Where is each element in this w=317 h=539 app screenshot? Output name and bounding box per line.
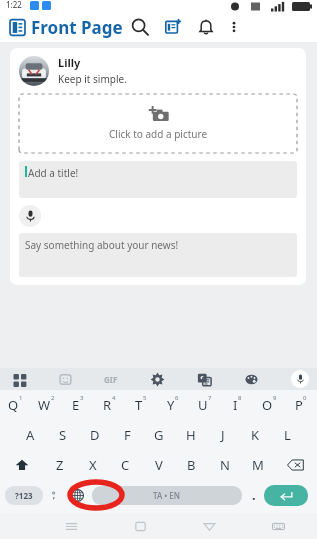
staticText: U xyxy=(198,396,208,414)
staticText: D xyxy=(90,426,100,444)
staticText: G xyxy=(154,426,164,444)
staticText: . xyxy=(252,486,256,504)
staticText: W xyxy=(38,396,51,414)
button[interactable]: TA • EN xyxy=(92,486,242,505)
button[interactable]: Click to add a picture xyxy=(19,94,297,153)
staticText: K xyxy=(251,426,260,444)
button[interactable]: Y xyxy=(157,390,189,420)
staticText: 0 xyxy=(303,394,307,402)
button[interactable]: E xyxy=(62,390,93,420)
staticText: N xyxy=(220,456,230,474)
staticText: Y xyxy=(167,396,175,414)
staticText: Front Page xyxy=(31,16,123,39)
button[interactable]: Home xyxy=(129,515,151,537)
staticText: Add a title! xyxy=(28,166,79,180)
button[interactable]: K xyxy=(239,420,271,450)
staticText: ?123 xyxy=(15,490,33,501)
staticText: 7 xyxy=(208,394,212,402)
staticText: C xyxy=(121,456,130,474)
button[interactable]: H xyxy=(175,420,207,450)
button[interactable]: L xyxy=(271,420,303,450)
button[interactable]: C xyxy=(109,450,142,480)
staticText: H xyxy=(186,426,196,444)
staticText: L xyxy=(284,426,291,444)
staticText: Say something about your news! xyxy=(25,238,179,252)
button[interactable]: More options xyxy=(226,19,242,35)
button[interactable]: Backspace xyxy=(274,450,317,480)
button[interactable]: Enter xyxy=(264,485,308,506)
button[interactable]: Clipboard xyxy=(12,372,27,387)
button[interactable]: Recent apps xyxy=(60,515,82,537)
button[interactable]: Add a title! xyxy=(19,161,297,198)
staticText: P xyxy=(295,396,303,414)
button[interactable]: B xyxy=(175,450,208,480)
button[interactable]: Translate xyxy=(197,372,212,387)
button[interactable]: P xyxy=(285,390,317,420)
button[interactable]: Settings xyxy=(150,372,165,387)
staticText: R xyxy=(103,396,112,414)
button[interactable]: X xyxy=(76,450,109,480)
staticText: S xyxy=(59,426,67,444)
button[interactable]: . xyxy=(246,480,262,510)
button[interactable]: I xyxy=(221,390,253,420)
button[interactable]: Change language xyxy=(66,484,88,506)
staticText: X xyxy=(89,456,97,474)
button[interactable]: D xyxy=(79,420,111,450)
button[interactable]: A xyxy=(14,420,47,450)
staticText: 4 xyxy=(112,394,116,402)
staticText: Z xyxy=(56,456,64,474)
button[interactable]: M xyxy=(241,450,274,480)
button[interactable]: Z xyxy=(43,450,76,480)
button[interactable]: Back xyxy=(198,515,220,537)
button[interactable]: U xyxy=(189,390,221,420)
button[interactable]: Notifications xyxy=(196,17,216,37)
button[interactable]: Themes xyxy=(244,372,259,387)
staticText: Lilly xyxy=(58,55,81,70)
staticText: I xyxy=(233,396,238,414)
button[interactable]: Hide keyboard xyxy=(267,515,289,537)
button[interactable]: Say something about your news! xyxy=(19,233,297,277)
button[interactable] xyxy=(19,56,49,86)
button[interactable]: W xyxy=(31,390,62,420)
button[interactable]: Shift xyxy=(0,450,43,480)
staticText: 8 xyxy=(238,394,242,402)
button[interactable]: GIF xyxy=(104,374,118,385)
button[interactable]: T xyxy=(125,390,157,420)
button[interactable]: J xyxy=(207,420,239,450)
button[interactable]: ?123 xyxy=(5,486,43,505)
button[interactable]: N xyxy=(208,450,241,480)
staticText: F xyxy=(124,426,131,444)
button[interactable]: Stickers xyxy=(58,372,73,387)
staticText: 1 xyxy=(19,394,23,402)
staticText: Q xyxy=(8,396,19,414)
button[interactable]: Voice typing xyxy=(291,370,309,388)
button[interactable]: Voice input xyxy=(19,205,41,227)
staticText: E xyxy=(72,396,80,414)
button[interactable]: F xyxy=(111,420,143,450)
button[interactable]: O xyxy=(253,390,285,420)
button[interactable]: R xyxy=(93,390,125,420)
button[interactable]: V xyxy=(142,450,175,480)
staticText: GIF xyxy=(104,374,118,385)
staticText: 9 xyxy=(273,394,277,402)
staticText: O xyxy=(262,396,273,414)
staticText: T xyxy=(135,396,143,414)
staticText: Keep it simple. xyxy=(58,72,127,86)
staticText: B xyxy=(187,456,196,474)
button[interactable]: Q xyxy=(0,390,31,420)
staticText: Click to add a picture xyxy=(109,127,208,141)
staticText: 6 xyxy=(175,394,179,402)
button[interactable]: Search xyxy=(130,17,150,37)
button[interactable]: S xyxy=(47,420,79,450)
staticText: 1:22 xyxy=(6,0,22,10)
button[interactable]: Comma xyxy=(47,488,62,503)
staticText: A xyxy=(26,426,35,444)
staticText: 5 xyxy=(143,394,147,402)
button[interactable]: New post xyxy=(163,17,183,37)
staticText: TA • EN xyxy=(153,490,181,501)
staticText: V xyxy=(155,456,163,474)
staticText: J xyxy=(221,426,225,444)
staticText: 2 xyxy=(51,394,55,402)
staticText: M xyxy=(252,456,264,474)
button[interactable]: G xyxy=(143,420,175,450)
